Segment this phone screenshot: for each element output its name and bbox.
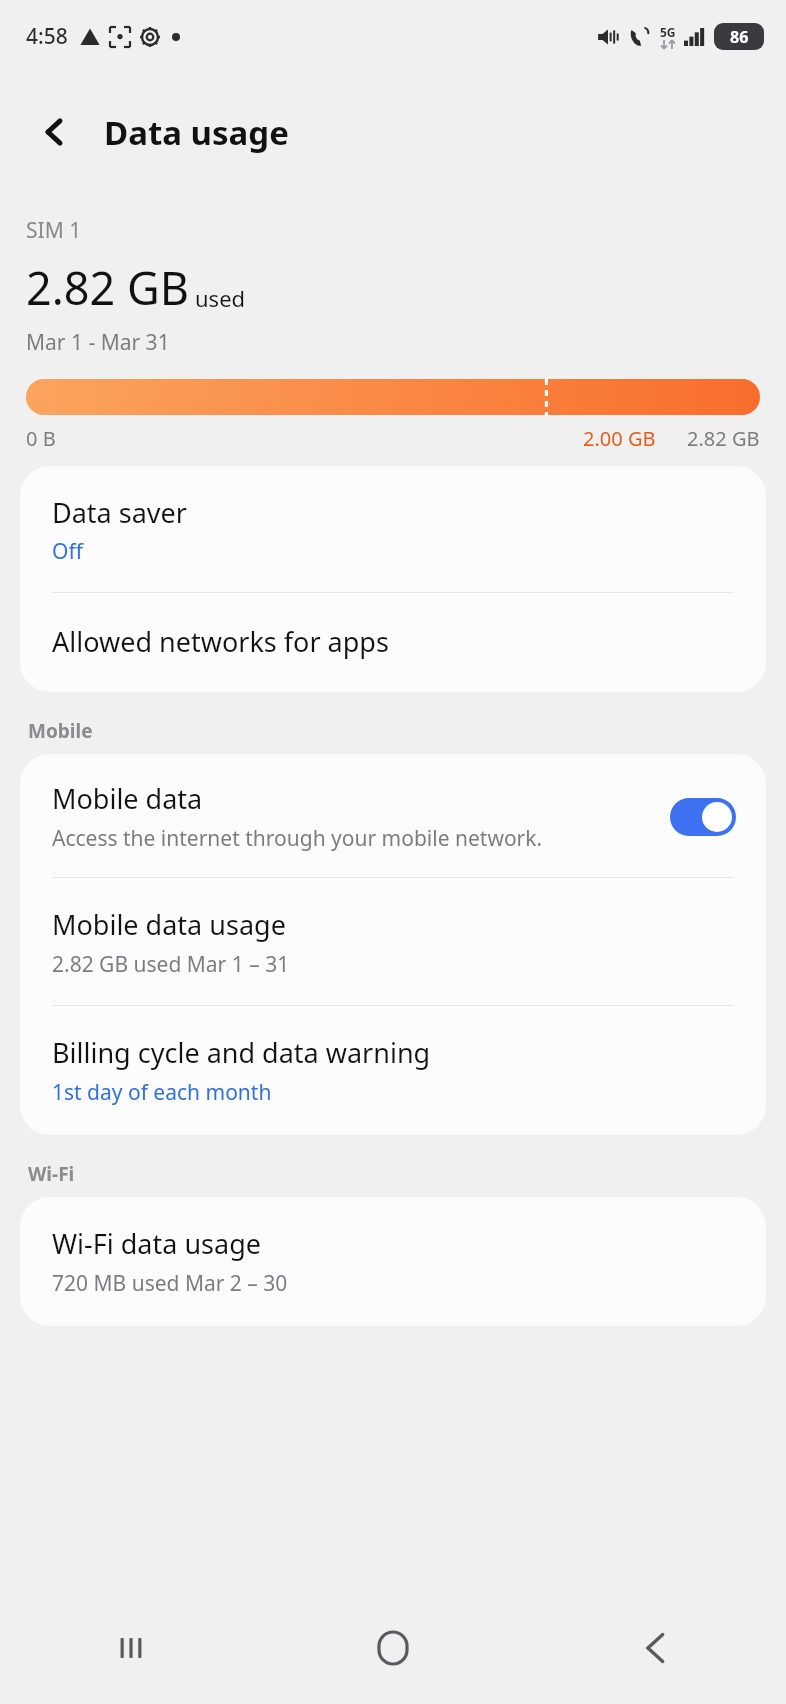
button[interactable]: Billing cycle and data warning (20, 1006, 766, 1135)
staticText: Off (52, 537, 83, 566)
staticText: Mar 1 - Mar 31 (26, 328, 170, 357)
staticText: Wi-Fi data usage (52, 1225, 262, 1262)
staticText: Billing cycle and data warning (52, 1034, 431, 1071)
staticText: Allowed networks for apps (52, 623, 389, 660)
staticText: 86 (730, 26, 749, 48)
button[interactable]: Mobile data toggle (670, 798, 736, 836)
button[interactable]: Back (26, 104, 82, 160)
staticText: 0 B (26, 425, 56, 452)
staticText: 2.00 GB (583, 425, 656, 452)
staticText: Data usage (104, 110, 289, 155)
button[interactable]: Mobile data usage (20, 878, 766, 1005)
staticText: 5G (660, 24, 676, 40)
staticText: 1st day of each month (52, 1078, 272, 1107)
button[interactable]: Home (262, 1592, 524, 1704)
button[interactable]: Data saver (20, 466, 766, 592)
staticText: 4:58 (26, 22, 68, 51)
staticText: SIM 1 (26, 216, 82, 245)
staticText: Mobile (28, 718, 93, 744)
button[interactable]: Wi-Fi data usage (20, 1197, 766, 1326)
button[interactable]: Mobile data (20, 754, 766, 877)
staticText: 2.82 GB used Mar 1 – 31 (52, 950, 290, 979)
staticText: Data saver (52, 494, 187, 531)
staticText: Mobile data usage (52, 906, 286, 943)
staticText: Wi-Fi (28, 1161, 75, 1187)
staticText: used (195, 283, 246, 313)
button[interactable]: Back (524, 1592, 786, 1704)
staticText: 720 MB used Mar 2 – 30 (52, 1269, 288, 1298)
staticText: 2.82 GB (687, 425, 760, 452)
button[interactable]: Allowed networks for apps (20, 593, 766, 692)
button[interactable]: Recent apps (0, 1592, 262, 1704)
staticText: 2.82 GB (26, 257, 189, 318)
staticText: Mobile data (52, 780, 203, 817)
staticText: Access the internet through your mobile … (52, 824, 543, 853)
